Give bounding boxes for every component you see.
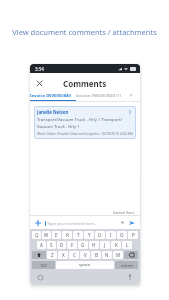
button[interactable]: P xyxy=(128,231,138,239)
staticText: Z xyxy=(51,252,54,258)
staticText: Q xyxy=(35,232,39,238)
button[interactable]: Key xyxy=(124,251,138,259)
button[interactable]: More options xyxy=(127,109,133,115)
staticText: R xyxy=(66,232,69,238)
button[interactable]: Close xyxy=(34,78,44,88)
button[interactable]: S xyxy=(47,241,56,249)
staticText: return xyxy=(121,263,133,268)
button[interactable]: A xyxy=(37,241,46,249)
button[interactable]: 123 xyxy=(32,261,55,269)
button[interactable]: Invoice INV0003840 (1) xyxy=(30,91,76,100)
button[interactable]: B xyxy=(91,251,101,259)
button[interactable]: H xyxy=(89,241,99,249)
staticText: Invoice INV0003840 (1) xyxy=(30,93,76,99)
button[interactable]: N xyxy=(102,251,112,259)
button[interactable]: U xyxy=(95,231,105,239)
button[interactable]: C xyxy=(69,251,79,259)
staticText: I xyxy=(110,232,112,238)
button[interactable]: space xyxy=(56,261,114,269)
button[interactable]: Voice input xyxy=(126,273,134,281)
button[interactable]: Send xyxy=(127,218,137,228)
button[interactable]: P xyxy=(122,91,140,100)
button[interactable]: I xyxy=(106,231,116,239)
staticText: T xyxy=(77,232,80,238)
button[interactable]: D xyxy=(57,241,66,249)
button[interactable]: X xyxy=(58,251,68,259)
staticText: G xyxy=(81,242,85,248)
staticText: space xyxy=(79,262,91,268)
staticText: K xyxy=(115,242,118,248)
button[interactable]: J xyxy=(100,241,110,249)
staticText: M xyxy=(116,252,121,258)
button[interactable]: F xyxy=(67,241,77,249)
button[interactable]: Emoji xyxy=(119,219,126,226)
staticText: Internal Users xyxy=(113,211,135,215)
staticText: D xyxy=(60,242,64,248)
staticText: E xyxy=(55,232,58,238)
staticText: P xyxy=(130,93,133,99)
staticText: Janelle Nelson xyxy=(37,109,69,115)
staticText: O xyxy=(120,232,124,238)
staticText: W xyxy=(44,232,49,238)
button[interactable]: Add attachment xyxy=(33,218,43,228)
staticText: H xyxy=(92,242,96,248)
button[interactable]: Janelle Nelson xyxy=(34,106,136,139)
button[interactable]: T xyxy=(73,231,83,239)
button[interactable]: Q xyxy=(32,231,41,239)
button[interactable]: Key xyxy=(32,251,46,259)
button[interactable]: Emoji keyboard xyxy=(36,273,44,281)
staticText: Type your comment here... xyxy=(47,221,98,226)
staticText: N xyxy=(105,252,109,258)
button[interactable]: Invoice INV0003840 (1) xyxy=(76,91,122,100)
staticText: S xyxy=(50,242,53,248)
staticText: 123 xyxy=(40,263,47,268)
staticText: F xyxy=(71,242,74,248)
staticText: Invoice INV0003840 (1) xyxy=(76,93,122,99)
button[interactable]: V xyxy=(80,251,90,259)
staticText: U xyxy=(98,232,102,238)
button[interactable]: K xyxy=(111,241,121,249)
staticText: J xyxy=(104,242,106,248)
staticText: X xyxy=(62,252,65,258)
staticText: 10/18/2019 4:42 AM xyxy=(101,131,133,136)
staticText: Comments xyxy=(63,78,107,89)
button[interactable]: return xyxy=(115,261,138,269)
button[interactable]: Type your comment here... xyxy=(45,219,119,227)
button[interactable]: M xyxy=(113,251,123,259)
button[interactable]: Z xyxy=(47,251,57,259)
button[interactable]: E xyxy=(52,231,61,239)
staticText: View document comments / attachments xyxy=(12,27,157,37)
staticText: P xyxy=(132,232,135,238)
button[interactable]: L xyxy=(122,241,132,249)
staticText: V xyxy=(84,252,87,258)
staticText: B xyxy=(95,252,98,258)
staticText: Y xyxy=(88,232,91,238)
button[interactable]: Y xyxy=(84,231,94,239)
staticText: L xyxy=(126,242,129,248)
button[interactable]: R xyxy=(62,231,72,239)
staticText: 3:54 xyxy=(35,66,44,72)
staticText: C xyxy=(73,252,76,258)
staticText: Work Order: Provide Data and Logistics xyxy=(37,131,100,136)
button[interactable]: W xyxy=(42,231,51,239)
staticText: A xyxy=(40,242,43,248)
staticText: Transport/Vacuum Truck - Hrly 1 Transpor… xyxy=(37,117,133,129)
button[interactable]: O xyxy=(117,231,127,239)
button[interactable]: G xyxy=(78,241,88,249)
